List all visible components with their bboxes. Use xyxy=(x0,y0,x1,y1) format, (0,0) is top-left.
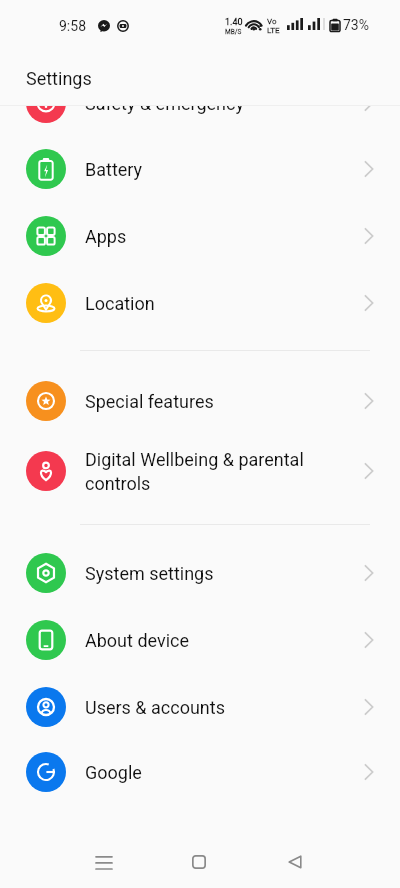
staticText: Location xyxy=(85,293,314,314)
staticText: LTE xyxy=(267,26,280,35)
button[interactable]: Battery xyxy=(0,136,400,202)
staticText: MB/S xyxy=(225,28,242,36)
staticText: Apps xyxy=(85,226,314,247)
staticText: Safety & emergency xyxy=(85,106,314,114)
staticText: About device xyxy=(85,630,314,651)
button[interactable]: Home xyxy=(169,842,229,882)
staticText: Google xyxy=(85,762,314,783)
button[interactable]: Google xyxy=(0,739,400,803)
staticText: Vo xyxy=(267,17,277,26)
staticText: Digital Wellbeing & parental controls xyxy=(85,449,314,494)
staticText: Settings xyxy=(26,68,92,89)
button[interactable]: Digital Wellbeing & parental controls xyxy=(0,434,400,508)
button[interactable]: Safety & emergency xyxy=(0,106,400,136)
staticText: 73% xyxy=(343,17,369,33)
button[interactable]: Apps xyxy=(0,203,400,269)
button[interactable]: Recent apps xyxy=(74,842,134,882)
button[interactable]: Back xyxy=(265,842,325,882)
button[interactable]: System settings xyxy=(0,540,400,606)
staticText: Special features xyxy=(85,391,314,412)
staticText: Battery xyxy=(85,159,314,180)
staticText: Users & accounts xyxy=(85,697,314,718)
button[interactable]: Special features xyxy=(0,368,400,434)
staticText: 9:58 xyxy=(59,18,86,34)
button[interactable]: About device xyxy=(0,607,400,673)
button[interactable]: Users & accounts xyxy=(0,674,400,740)
staticText: 1.40 xyxy=(225,17,243,28)
staticText: System settings xyxy=(85,563,314,584)
button[interactable]: Location xyxy=(0,270,400,336)
